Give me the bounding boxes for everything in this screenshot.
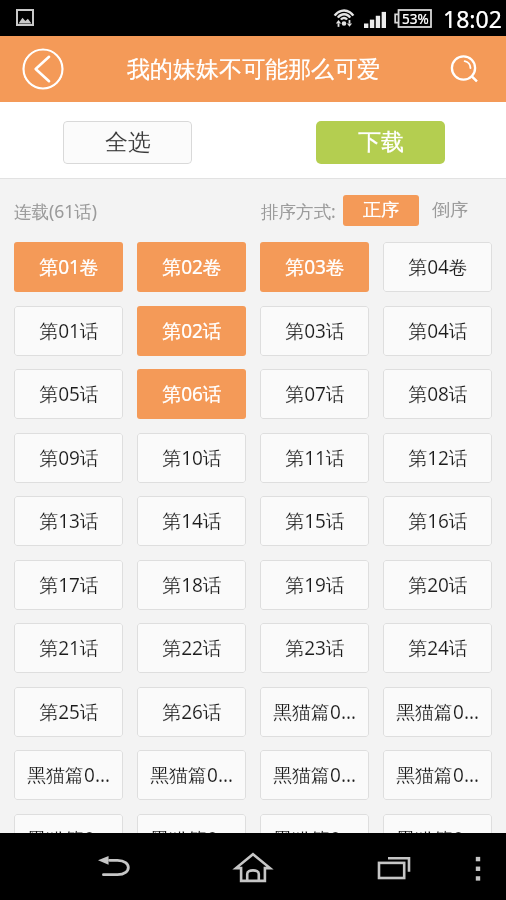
staticText: 倒序 [432,199,468,222]
staticText: 第23话 [285,635,345,661]
staticText: 第01卷 [39,254,99,280]
staticText: 我的妹妹不可能那么可爱 [127,55,380,84]
staticText: 黑猫篇0… [273,762,356,788]
staticText: 黑猫篇0… [396,826,479,852]
button[interactable]: 第07话 [260,369,369,419]
staticText: 连载(61话) [14,199,98,223]
button[interactable]: Recent apps [358,839,430,895]
button[interactable]: 黑猫篇0… [14,814,123,864]
button[interactable]: 第09话 [14,433,123,483]
staticText: 第04卷 [408,254,468,280]
staticText: 53% [402,10,429,28]
button[interactable]: Search [446,51,482,87]
button[interactable]: 第14话 [137,496,246,546]
button[interactable]: 第08话 [383,369,492,419]
button[interactable]: More options [442,839,506,895]
staticText: 第21话 [39,635,99,661]
button[interactable]: 第20话 [383,560,492,610]
staticText: 第05话 [39,381,99,407]
button[interactable]: 第26话 [137,687,246,737]
staticText: 第04话 [408,318,468,344]
button[interactable]: 第21话 [14,623,123,673]
button[interactable]: Home [217,839,289,895]
button[interactable]: 正序 [343,195,419,226]
staticText: 黑猫篇0… [396,699,479,725]
button[interactable]: 黑猫篇0… [383,687,492,737]
staticText: 第15话 [285,508,345,534]
staticText: 黑猫篇0… [396,762,479,788]
staticText: 下载 [358,128,404,157]
staticText: 第08话 [408,381,468,407]
button[interactable]: 第25话 [14,687,123,737]
button[interactable]: 黑猫篇0… [14,750,123,800]
staticText: 第02话 [162,318,222,344]
button[interactable]: 第18话 [137,560,246,610]
staticText: 正序 [363,199,399,222]
staticText: 第20话 [408,572,468,598]
staticText: 黑猫篇0… [150,826,233,852]
staticText: 18:02 [443,3,502,34]
staticText: 第07话 [285,381,345,407]
staticText: 黑猫篇0… [150,762,233,788]
staticText: 第03卷 [285,254,345,280]
button[interactable]: 第17话 [14,560,123,610]
staticText: 第06话 [162,381,222,407]
button[interactable]: 倒序 [432,199,468,222]
button[interactable]: 下载 [316,121,445,164]
staticText: 黑猫篇0… [27,762,110,788]
button[interactable]: 黑猫篇0… [260,814,369,864]
staticText: 第12话 [408,445,468,471]
staticText: 第19话 [285,572,345,598]
staticText: 排序方式: [261,199,336,223]
button[interactable]: 第03话 [260,306,369,356]
staticText: 第11话 [285,445,345,471]
button[interactable]: 第24话 [383,623,492,673]
button[interactable]: 第02卷 [137,242,246,292]
button[interactable]: 第01话 [14,306,123,356]
button[interactable]: 第23话 [260,623,369,673]
staticText: 第16话 [408,508,468,534]
staticText: 第25话 [39,699,99,725]
button[interactable]: 第05话 [14,369,123,419]
button[interactable]: 黑猫篇0… [137,814,246,864]
button[interactable]: 第12话 [383,433,492,483]
staticText: 第18话 [162,572,222,598]
staticText: 黑猫篇0… [273,826,356,852]
button[interactable]: 第10话 [137,433,246,483]
staticText: 第10话 [162,445,222,471]
staticText: 第01话 [39,318,99,344]
staticText: 黑猫篇0… [27,826,110,852]
button[interactable]: 第04话 [383,306,492,356]
button[interactable]: Back [78,839,150,895]
button[interactable]: 黑猫篇0… [260,687,369,737]
staticText: 第17话 [39,572,99,598]
button[interactable]: 第19话 [260,560,369,610]
button[interactable]: 黑猫篇0… [383,814,492,864]
staticText: 第24话 [408,635,468,661]
button[interactable]: Back [22,48,64,90]
staticText: 第13话 [39,508,99,534]
button[interactable]: 黑猫篇0… [137,750,246,800]
staticText: 第22话 [162,635,222,661]
button[interactable]: 第06话 [137,369,246,419]
button[interactable]: 第03卷 [260,242,369,292]
button[interactable]: 第16话 [383,496,492,546]
staticText: 第14话 [162,508,222,534]
button[interactable]: 第01卷 [14,242,123,292]
button[interactable]: 黑猫篇0… [260,750,369,800]
staticText: 第09话 [39,445,99,471]
staticText: 第03话 [285,318,345,344]
button[interactable]: 黑猫篇0… [383,750,492,800]
button[interactable]: 第11话 [260,433,369,483]
staticText: 第26话 [162,699,222,725]
staticText: 全选 [105,128,151,157]
staticText: 第02卷 [162,254,222,280]
button[interactable]: 第04卷 [383,242,492,292]
button[interactable]: 第13话 [14,496,123,546]
button[interactable]: 全选 [63,121,192,164]
staticText: 黑猫篇0… [273,699,356,725]
button[interactable]: 第15话 [260,496,369,546]
button[interactable]: 第22话 [137,623,246,673]
button[interactable]: 第02话 [137,306,246,356]
